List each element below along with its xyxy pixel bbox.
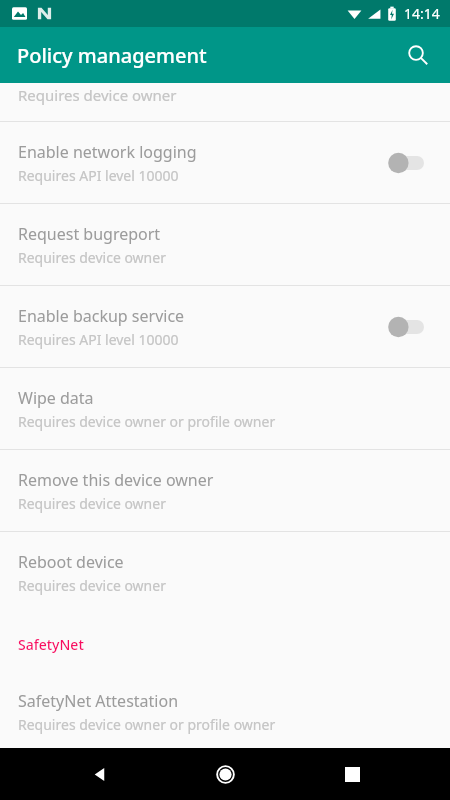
button[interactable]: Recent apps <box>328 750 376 798</box>
staticText: Requires device owner or profile owner <box>18 715 276 734</box>
staticText: Request bugreport <box>18 223 161 245</box>
staticText: Reboot device <box>18 551 124 573</box>
button[interactable]: Request bugreport <box>0 204 450 285</box>
staticText: 14:14 <box>404 4 440 23</box>
staticText: Requires API level 10000 <box>18 166 179 185</box>
staticText: Enable network logging <box>18 141 197 163</box>
staticText: Remove this device owner <box>18 469 214 491</box>
button[interactable]: Remove this device owner <box>0 450 450 531</box>
staticText: Policy management <box>17 42 207 69</box>
button[interactable]: Requires device owner <box>0 83 450 121</box>
staticText: Requires API level 10000 <box>18 330 179 349</box>
staticText: Requires device owner <box>18 248 166 267</box>
staticText: Requires device owner <box>18 576 166 595</box>
staticText: Requires device owner <box>18 494 166 513</box>
button[interactable]: Reboot device <box>0 532 450 613</box>
button[interactable]: Wipe data <box>0 368 450 449</box>
button[interactable]: Search <box>394 31 442 79</box>
staticText: SafetyNet Attestation <box>18 690 179 712</box>
staticText: Requires device owner <box>18 85 177 105</box>
staticText: Enable backup service <box>18 305 185 327</box>
staticText: Wipe data <box>18 387 94 409</box>
button[interactable]: Enable backup service <box>0 286 450 367</box>
staticText: Requires device owner or profile owner <box>18 412 276 431</box>
button[interactable]: Back <box>76 750 124 798</box>
button[interactable]: Enable network logging <box>0 122 450 203</box>
button[interactable]: SafetyNet Attestation <box>0 675 450 748</box>
button[interactable]: Home <box>201 750 249 798</box>
staticText: SafetyNet <box>18 635 84 654</box>
